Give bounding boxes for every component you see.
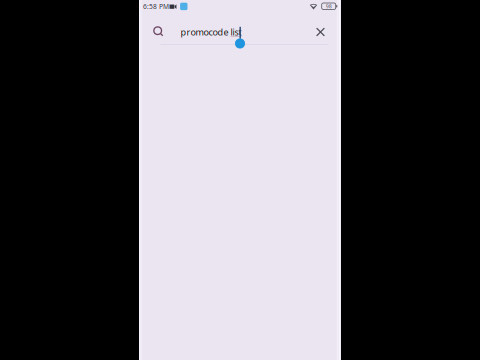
- staticText: promocode list: [180, 26, 241, 38]
- staticText: 6:58 PM: [143, 2, 169, 11]
- button[interactable]: Search: [146, 18, 172, 46]
- button[interactable]: Clear search: [307, 18, 333, 46]
- staticText: 98: [326, 3, 332, 10]
